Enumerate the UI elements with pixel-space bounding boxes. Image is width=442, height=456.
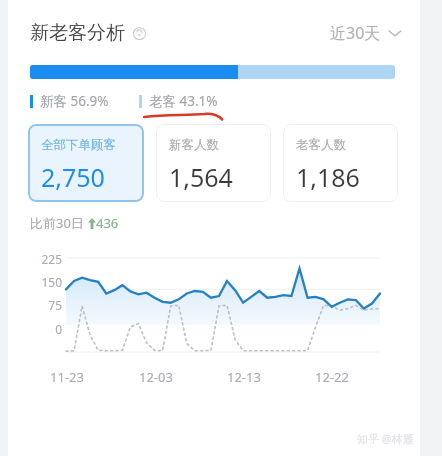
staticText: 225 [41,251,62,267]
staticText: 知乎 @林雁 [357,431,414,446]
staticText: 12-03 [139,368,173,386]
button[interactable]: 全部下单顾客 [28,124,144,202]
button[interactable]: 新客人数 [156,124,271,202]
staticText: 436 [96,214,119,232]
button[interactable]: 帮助 [131,25,147,41]
staticText: 新客 56.9% [40,92,109,110]
staticText: 比前30日 [30,214,88,232]
staticText: 全部下单顾客 [41,137,116,153]
staticText: 2,750 [41,160,105,194]
staticText: 老客人数 [296,137,346,153]
button[interactable]: 老客人数 [283,124,398,202]
staticText: 近30天 [330,22,381,44]
staticText: 12-22 [315,368,349,386]
staticText: 新老客分析 [30,21,125,45]
staticText: 150 [41,274,62,290]
staticText: 0 [55,321,62,337]
staticText: 12-13 [227,368,261,386]
staticText: 1,564 [169,160,233,194]
staticText: 11-23 [50,368,84,386]
staticText: 新客人数 [169,137,219,153]
staticText: 1,186 [296,160,360,194]
staticText: 75 [48,297,62,313]
staticText: 老客 43.1% [149,92,218,110]
button[interactable]: 近30天 [326,18,406,48]
